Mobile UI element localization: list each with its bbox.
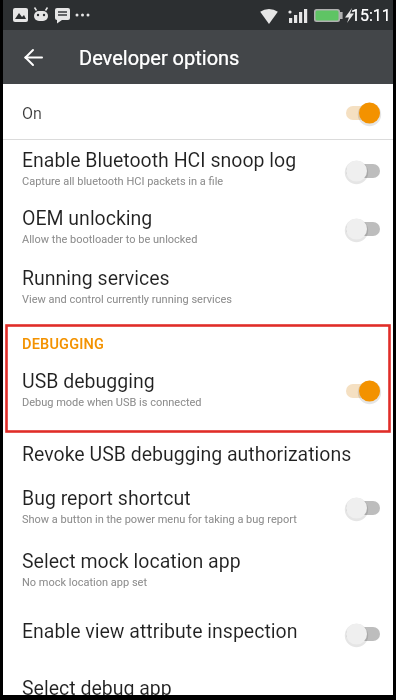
button[interactable]: Bug report shortcut — [3, 477, 393, 540]
staticText: Revoke USB debugging authorizations — [22, 443, 352, 466]
staticText: Select mock location app — [22, 550, 241, 573]
button[interactable]: On — [3, 84, 393, 139]
staticText: Debug mode when USB is connected — [22, 396, 202, 409]
staticText: OEM unlocking — [22, 207, 153, 230]
staticText: Enable Bluetooth HCI snoop log — [22, 149, 297, 172]
button[interactable]: Running services — [3, 258, 393, 316]
staticText: 15:11 — [351, 6, 391, 25]
button[interactable]: Select debug app — [3, 667, 393, 700]
button[interactable]: OEM unlocking — [3, 198, 393, 258]
staticText: View and control currently running servi… — [22, 293, 232, 306]
button[interactable]: Enable Bluetooth HCI snoop log — [3, 140, 393, 198]
staticText: Running services — [22, 267, 170, 290]
staticText: Show a button in the power menu for taki… — [22, 513, 297, 526]
staticText: Developer options — [79, 46, 240, 69]
staticText: USB debugging — [22, 370, 155, 393]
staticText: Allow the bootloader to be unlocked — [22, 233, 198, 246]
staticText: Capture all bluetooth HCI packets in a f… — [22, 175, 224, 188]
button[interactable]: USB debugging — [3, 360, 393, 432]
button[interactable]: Revoke USB debugging authorizations — [3, 432, 393, 477]
staticText: Select debug app — [22, 677, 172, 700]
staticText: Bug report shortcut — [22, 487, 191, 510]
staticText: On — [22, 104, 344, 123]
button[interactable]: Enable view attribute inspection — [3, 610, 393, 667]
button[interactable] — [14, 38, 52, 76]
button[interactable]: Select mock location app — [3, 540, 393, 610]
staticText: No mock location app set — [22, 576, 148, 589]
staticText: Enable view attribute inspection — [22, 620, 298, 643]
staticText: DEBUGGING — [22, 336, 105, 353]
